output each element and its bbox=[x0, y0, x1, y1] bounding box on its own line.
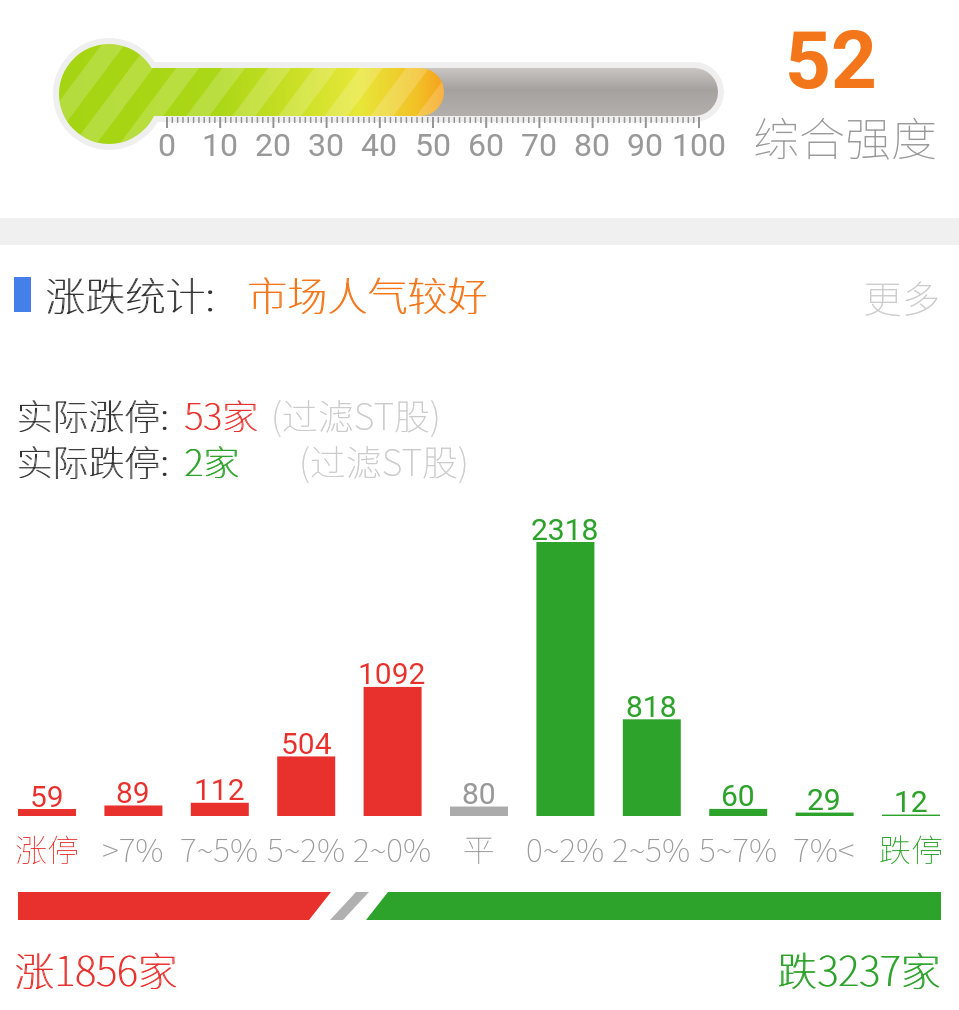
staticText: 89 bbox=[116, 775, 150, 810]
staticText: 综合强度 bbox=[753, 103, 937, 170]
staticText: 实际涨停: bbox=[16, 388, 169, 440]
staticText: 818 bbox=[626, 689, 677, 724]
staticText: (过滤ST股) bbox=[271, 388, 441, 440]
staticText: 7~5% bbox=[180, 825, 259, 871]
staticText: 实际跌停: bbox=[17, 434, 170, 486]
staticText: 52 bbox=[785, 14, 877, 108]
staticText: 2318 bbox=[531, 512, 599, 547]
staticText: 市场人气较好 bbox=[248, 265, 488, 323]
staticText: 53家 bbox=[184, 388, 258, 440]
staticText: 涨跌统计: bbox=[45, 265, 215, 323]
staticText: 7%< bbox=[793, 825, 855, 871]
staticText: 504 bbox=[281, 726, 332, 761]
staticText: 更多 bbox=[864, 269, 941, 319]
staticText: 涨1856家 bbox=[15, 940, 179, 998]
staticText: 涨跌统计: bbox=[46, 265, 216, 323]
staticText: 70 bbox=[521, 126, 557, 164]
staticText: 80 bbox=[462, 776, 496, 811]
staticText: 10 bbox=[202, 126, 238, 164]
staticText: 0~2% bbox=[526, 825, 605, 871]
staticText: 2~0% bbox=[353, 825, 432, 871]
staticText: 0 bbox=[158, 126, 176, 164]
staticText: 市场人气较好 bbox=[247, 265, 487, 323]
staticText: 29 bbox=[807, 782, 841, 817]
staticText: 59 bbox=[30, 779, 64, 814]
staticText: 60 bbox=[721, 778, 755, 813]
staticText: 5~2% bbox=[267, 825, 346, 871]
staticText: 2家 bbox=[185, 434, 240, 486]
staticText: 53家 bbox=[185, 388, 259, 440]
staticText: 1092 bbox=[358, 656, 426, 691]
staticText: 50 bbox=[415, 126, 451, 164]
staticText: 平 bbox=[463, 825, 496, 871]
staticText: 100 bbox=[672, 126, 726, 164]
staticText: 涨停 bbox=[15, 825, 80, 871]
staticText: 跌3237家 bbox=[778, 940, 942, 998]
staticText: 跌停 bbox=[879, 825, 944, 871]
staticText: (过滤ST股) bbox=[299, 434, 469, 486]
staticText: 60 bbox=[468, 126, 504, 164]
staticText: 20 bbox=[255, 126, 291, 164]
staticText: 2家 bbox=[184, 434, 239, 486]
staticText: 5~7% bbox=[699, 825, 778, 871]
staticText: 30 bbox=[308, 126, 344, 164]
button[interactable]: 更多 bbox=[841, 269, 941, 319]
staticText: 跌3237家 bbox=[777, 940, 941, 998]
staticText: 实际跌停: bbox=[16, 434, 169, 486]
staticText: 实际涨停: bbox=[17, 388, 170, 440]
staticText: 112 bbox=[194, 772, 245, 807]
staticText: 40 bbox=[361, 126, 397, 164]
staticText: 12 bbox=[894, 784, 928, 819]
staticText: >7% bbox=[102, 825, 164, 871]
staticText: 涨1856家 bbox=[14, 940, 178, 998]
staticText: 80 bbox=[574, 126, 610, 164]
staticText: 2~5% bbox=[612, 825, 691, 871]
staticText: 90 bbox=[627, 126, 663, 164]
